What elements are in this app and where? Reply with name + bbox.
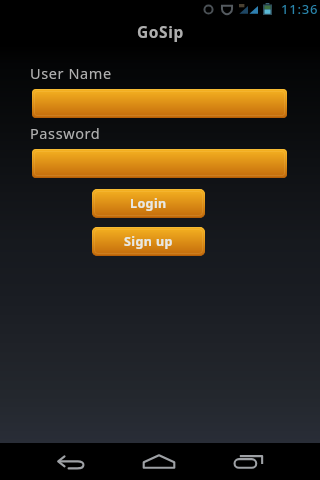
button[interactable]: Back (45, 443, 97, 480)
staticText: Login (130, 195, 167, 212)
button[interactable]: Login (92, 189, 205, 218)
staticText: User Name (30, 63, 112, 83)
staticText: Password (30, 123, 101, 143)
other: Sync (203, 4, 214, 15)
button[interactable] (32, 89, 287, 118)
button[interactable]: Home (133, 443, 185, 480)
staticText: 11:36 (281, 0, 319, 18)
staticText: GoSip (137, 21, 184, 42)
button[interactable]: Recent apps (222, 443, 274, 480)
button[interactable]: Sign up (92, 227, 205, 256)
staticText: Sign up (124, 233, 173, 250)
other: Security (221, 3, 233, 15)
button[interactable] (32, 149, 287, 178)
